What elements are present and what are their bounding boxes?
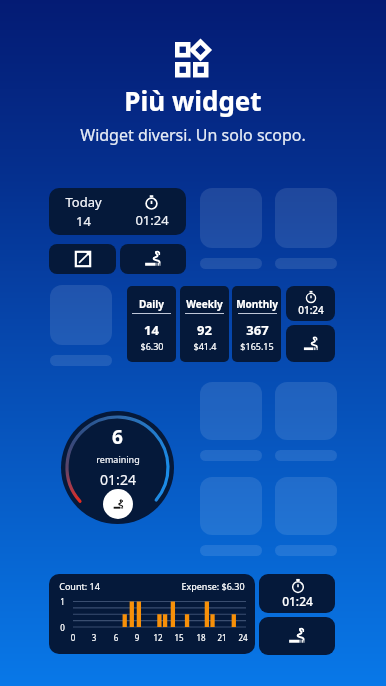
staticText: 18 (194, 632, 208, 643)
staticText: Count: 14 (59, 580, 100, 592)
staticText: 1 (60, 596, 65, 607)
button[interactable]: Weekly (180, 286, 229, 362)
staticText: 6 (112, 424, 123, 450)
button[interactable]: Add smoke (259, 617, 335, 655)
staticText: 21 (215, 632, 229, 643)
staticText: 3 (87, 632, 101, 643)
staticText: Più widget (124, 83, 262, 118)
staticText: 92 (197, 321, 212, 339)
staticText: 01:24 (100, 470, 136, 489)
staticText: 12 (151, 632, 165, 643)
button[interactable]: Count: 14 (49, 574, 255, 654)
staticText: 01:24 (282, 593, 313, 609)
staticText: 14 (76, 212, 91, 230)
staticText: remaining (96, 453, 140, 465)
staticText: 6 (109, 632, 123, 643)
button[interactable]: Open app (49, 244, 116, 274)
staticText: Today (65, 193, 102, 211)
staticText: Widget diversi. Un solo scopo. (80, 124, 306, 146)
staticText: 14 (144, 321, 159, 339)
staticText: 9 (130, 632, 144, 643)
button[interactable]: Daily (127, 286, 176, 362)
staticText: Monthly (236, 297, 278, 311)
staticText: 0 (66, 632, 80, 643)
staticText: 0 (60, 622, 65, 633)
staticText: 24 (236, 632, 250, 643)
button[interactable]: Add smoke (286, 325, 335, 362)
staticText: Expense: $6.30 (181, 580, 245, 592)
button[interactable]: Add smoke (103, 489, 133, 519)
button[interactable]: Today (49, 188, 186, 235)
button[interactable]: 01:24 (259, 574, 335, 613)
staticText: Daily (139, 297, 164, 311)
button[interactable]: Add smoke (120, 244, 186, 274)
button[interactable]: 01:24 (286, 286, 335, 321)
staticText: 367 (246, 321, 269, 339)
staticText: 15 (172, 632, 186, 643)
staticText: $6.30 (140, 340, 164, 352)
button[interactable]: Monthly (232, 286, 281, 362)
staticText: 01:24 (135, 211, 169, 229)
staticText: $165.15 (240, 340, 274, 352)
staticText: $41.4 (193, 340, 217, 352)
staticText: Weekly (186, 297, 223, 311)
staticText: 01:24 (298, 303, 324, 317)
